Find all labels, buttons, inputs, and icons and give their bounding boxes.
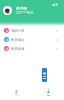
button[interactable]: Customer service [42, 68, 47, 82]
button[interactable]: 我的订单 [0, 26, 64, 35]
button[interactable]: 收货地址 [0, 35, 64, 44]
button[interactable]: Home [0, 86, 32, 99]
button[interactable]: Mine [32, 86, 64, 99]
staticText: 收货地址 [11, 38, 25, 42]
button[interactable]: Profile photo [3, 6, 12, 15]
button[interactable]: 联系客服 [0, 44, 64, 53]
staticText: 138****8888 [16, 11, 34, 15]
staticText: 张小明 [16, 6, 28, 11]
staticText: 我的订单 [11, 29, 25, 33]
staticText: 联系客服 [11, 47, 25, 51]
